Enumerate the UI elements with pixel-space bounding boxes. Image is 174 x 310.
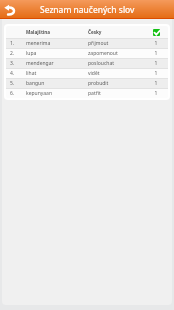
staticText: Seznam naučených slov [40,4,135,16]
staticText: 1 [144,80,168,87]
staticText: bangun [26,80,88,87]
staticText: lupa [26,50,88,57]
staticText: 1 [144,40,168,47]
staticText: vidět [88,70,144,77]
staticText: patřit [88,90,144,97]
staticText: zapomenout [88,50,144,57]
button[interactable]: 1. [6,39,168,48]
staticText: přijmout [88,40,144,47]
button[interactable]: 5. [6,79,168,88]
button[interactable]: 6. [6,89,168,98]
staticText: Česky [88,29,153,35]
button[interactable]: 3. [6,59,168,68]
staticText: mendengar [26,60,88,67]
staticText: Malajština [26,29,88,35]
staticText: 6. [10,90,26,97]
staticText: 1 [144,70,168,77]
button[interactable]: 4. [6,69,168,78]
staticText: 1. [10,40,26,47]
staticText: 5. [10,80,26,87]
staticText: lihat [26,70,88,77]
staticText: poslouchat [88,60,144,67]
staticText: kepunyaan [26,90,88,97]
staticText: 1 [144,50,168,57]
button[interactable]: 2. [6,49,168,58]
button[interactable]: Back [0,0,19,19]
staticText: 1 [144,90,168,97]
staticText: 1 [144,60,168,67]
staticText: 4. [10,70,26,77]
staticText: menerima [26,40,88,47]
staticText: 3. [10,60,26,67]
staticText: 2. [10,50,26,57]
button[interactable]: Select all [153,29,160,36]
staticText: probudit [88,80,144,87]
